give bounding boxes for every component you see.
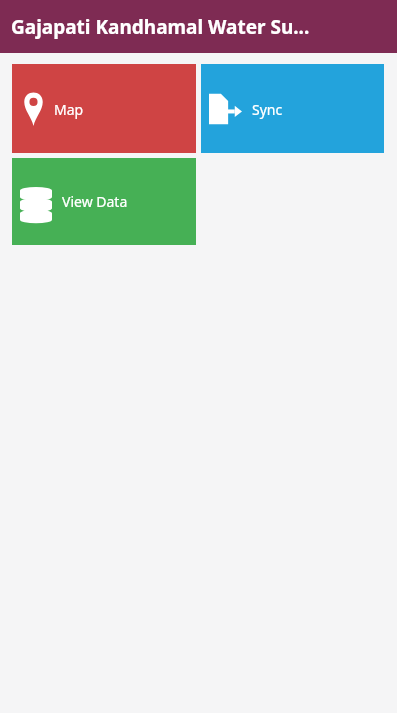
staticText: Sync	[252, 100, 283, 119]
button[interactable]: Map	[12, 64, 196, 153]
staticText: Gajapati Kandhamal Water Su...	[11, 14, 310, 40]
button[interactable]: View Data	[12, 158, 196, 245]
button[interactable]: Sync	[201, 64, 384, 153]
staticText: Map	[54, 100, 84, 119]
staticText: View Data	[62, 192, 128, 211]
